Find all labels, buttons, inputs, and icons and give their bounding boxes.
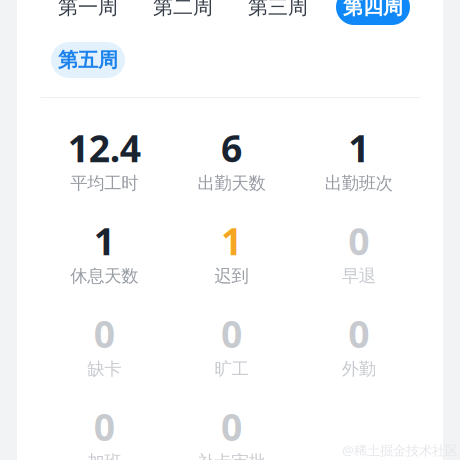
button[interactable]: 第四周 <box>336 0 410 25</box>
staticText: 早退 <box>342 265 376 287</box>
staticText: 0 <box>348 309 369 358</box>
staticText: 0 <box>94 402 115 451</box>
button[interactable]: 0 <box>40 402 168 460</box>
staticText: 出勤天数 <box>197 173 265 194</box>
staticText: 1 <box>221 216 242 265</box>
button[interactable]: 0 <box>168 309 295 380</box>
staticText: 0 <box>221 309 242 358</box>
staticText: 休息天数 <box>70 265 138 287</box>
staticText: 12.4 <box>68 123 141 173</box>
staticText: 0 <box>348 216 369 265</box>
staticText: 迟到 <box>214 265 248 287</box>
button[interactable]: 第五周 <box>51 42 125 78</box>
staticText: 缺卡 <box>87 358 121 380</box>
button[interactable]: 12.4 <box>40 123 168 194</box>
button[interactable]: 0 <box>40 309 168 380</box>
staticText: 第一周 <box>58 0 118 19</box>
staticText: 外勤 <box>342 358 376 380</box>
button[interactable]: 1 <box>40 216 168 287</box>
staticText: 0 <box>221 402 242 451</box>
button[interactable]: 第三周 <box>241 0 315 25</box>
button[interactable]: 0 <box>168 402 295 460</box>
staticText: @稀土掘金技术社区 <box>342 441 458 459</box>
staticText: 平均工时 <box>70 173 138 194</box>
staticText: 第二周 <box>153 0 213 19</box>
staticText: 0 <box>94 309 115 358</box>
staticText: 1 <box>348 123 369 173</box>
button[interactable]: 6 <box>168 123 295 194</box>
staticText: 第四周 <box>343 0 403 19</box>
staticText: 1 <box>94 216 115 265</box>
staticText: 出勤班次 <box>325 173 393 194</box>
staticText: 补卡审批 <box>197 451 265 460</box>
button[interactable]: 0 <box>295 309 422 380</box>
button[interactable]: 1 <box>295 123 422 194</box>
staticText: 第三周 <box>248 0 308 19</box>
button[interactable]: 第一周 <box>51 0 125 25</box>
staticText: 旷工 <box>214 358 248 380</box>
button[interactable]: 0 <box>295 216 422 287</box>
staticText: 6 <box>221 123 242 173</box>
button[interactable]: 第二周 <box>146 0 220 25</box>
staticText: 第五周 <box>58 48 118 72</box>
button[interactable]: 1 <box>168 216 295 287</box>
staticText: 加班 <box>87 451 121 460</box>
